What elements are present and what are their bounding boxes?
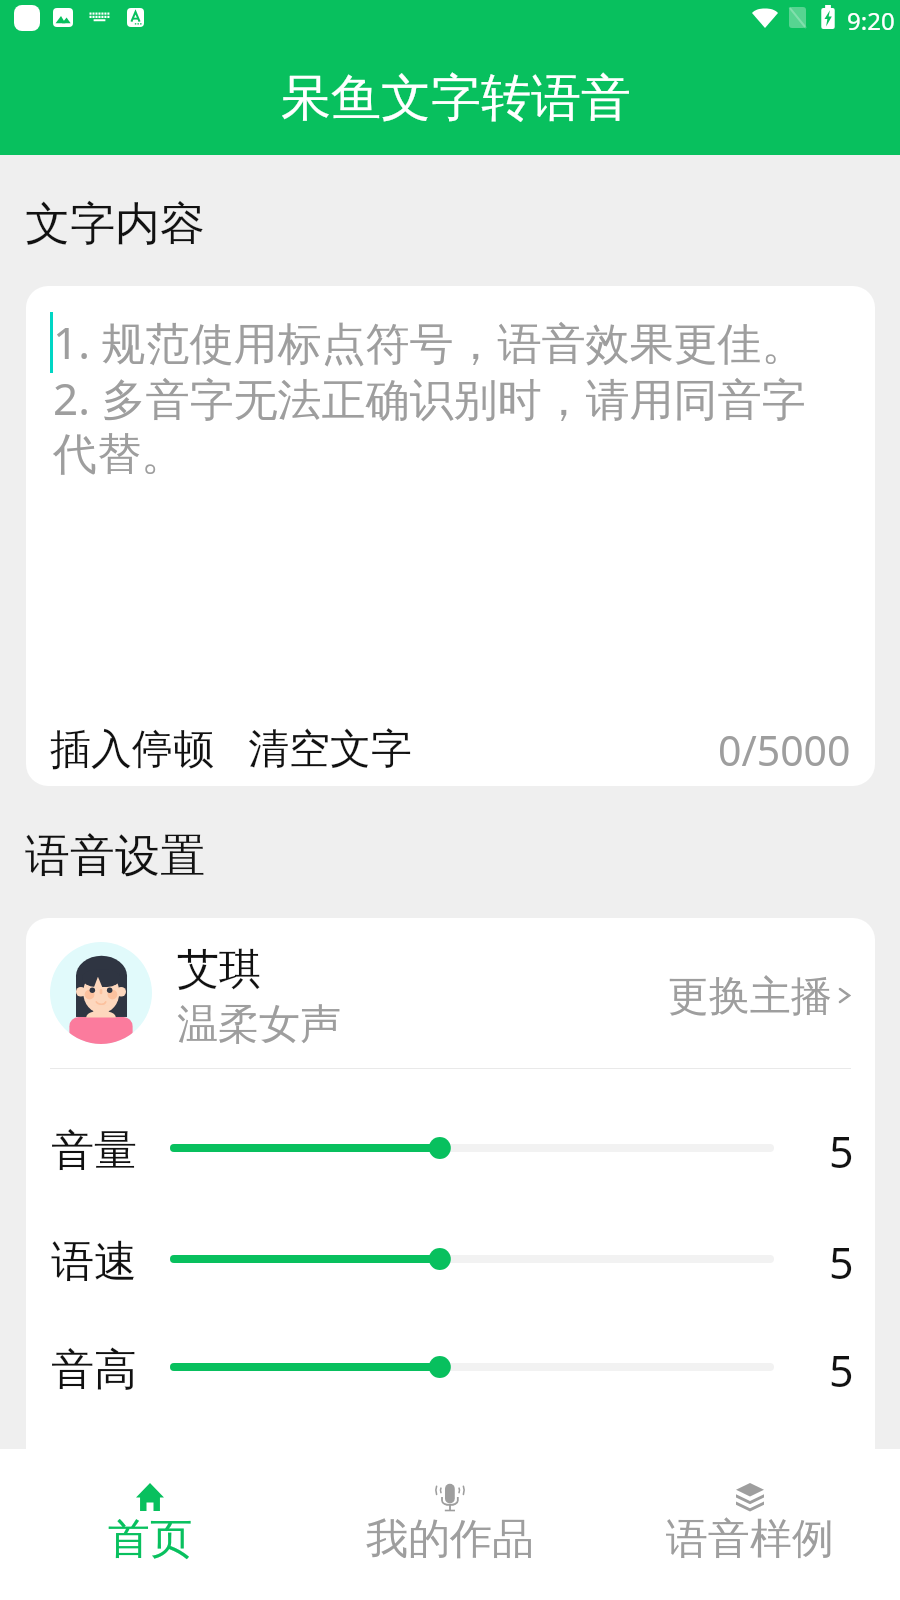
staticText: 音高 xyxy=(51,1343,137,1397)
staticText: 文字内容 xyxy=(25,196,205,253)
button[interactable] xyxy=(170,1344,774,1390)
staticText: 首页 xyxy=(108,1513,192,1566)
staticText: 呆鱼文字转语音 xyxy=(281,67,631,130)
button[interactable]: 艾琪 xyxy=(26,918,875,1067)
staticText: 插入停顿 xyxy=(50,724,214,776)
button[interactable] xyxy=(170,1236,774,1282)
button[interactable]: 清空文字 xyxy=(238,716,422,784)
staticText: 语速 xyxy=(51,1235,137,1289)
other: Voice samples xyxy=(736,1483,764,1511)
button[interactable]: Voice samples xyxy=(600,1449,900,1600)
button[interactable] xyxy=(170,1125,774,1171)
button[interactable]: Home xyxy=(0,1449,300,1600)
staticText: 语音样例 xyxy=(666,1513,834,1566)
staticText: 0/5000 xyxy=(718,722,851,778)
staticText: 音量 xyxy=(51,1124,137,1178)
other: Home xyxy=(136,1483,164,1511)
staticText: 更换主播 xyxy=(668,971,832,1023)
staticText: 温柔女声 xyxy=(177,999,341,1051)
staticText: 5 xyxy=(829,1233,854,1292)
staticText: 5 xyxy=(829,1341,854,1400)
staticText: 9:20 xyxy=(847,4,895,37)
staticText: 语音设置 xyxy=(25,828,205,885)
staticText: 我的作品 xyxy=(366,1513,534,1566)
button[interactable]: 更换主播 xyxy=(652,961,848,1033)
other: My works xyxy=(432,1479,468,1515)
staticText: 艾琪 xyxy=(177,943,261,996)
staticText: 5 xyxy=(829,1122,854,1181)
button[interactable]: 插入停顿 xyxy=(40,716,224,784)
button[interactable]: My works xyxy=(300,1449,600,1600)
staticText: 1. 规范使用标点符号，语音效果更佳。 2. 多音字无法正确识别时，请用同音字代… xyxy=(53,312,845,482)
staticText: 清空文字 xyxy=(248,724,412,776)
